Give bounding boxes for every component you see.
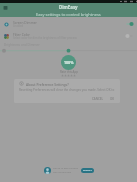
staticText: INSTALL [83,169,92,172]
button[interactable]: Get up to date contacts [44,166,94,175]
button[interactable]: OK [108,96,117,102]
button[interactable]: Rate star [73,74,76,77]
staticText: Brightness and Dimmer [4,43,40,47]
staticText: Select color for dim the brightness of f… [13,36,77,40]
button[interactable]: Rate star [61,74,64,77]
staticText: Filter Color [13,32,30,36]
button[interactable]: Rate star [67,74,70,77]
staticText: Get up to date contacts [53,167,79,170]
button[interactable]: Rate star [64,74,67,77]
staticText: Stay Synced now [53,171,71,174]
button[interactable]: Turn off Screen Dimmer [125,21,134,27]
button[interactable]: Screen Dimmer [0,18,137,30]
button[interactable]: INSTALL [81,168,94,173]
staticText: Screen Dimmer [13,20,37,24]
staticText: Easy settings to control brightness [36,12,101,17]
button[interactable]: 100% [61,55,76,70]
staticText: CANCEL [92,97,103,101]
staticText: Rate this App [60,70,78,74]
staticText: OK [110,97,115,101]
staticText: 100% [64,60,74,65]
staticText: DimEasy [59,4,78,10]
button[interactable]: Navigate up [3,5,8,10]
button[interactable]: Filter Color [0,30,137,42]
button[interactable]: CANCEL [90,96,105,102]
button[interactable]: Turn on Filter Color [125,33,134,39]
staticText: Enabled [13,24,24,28]
staticText: Resetting Preferences will clear the cha… [19,88,120,92]
staticText: About Preference Settings? [26,82,69,86]
button[interactable]: Rate star [70,74,73,77]
